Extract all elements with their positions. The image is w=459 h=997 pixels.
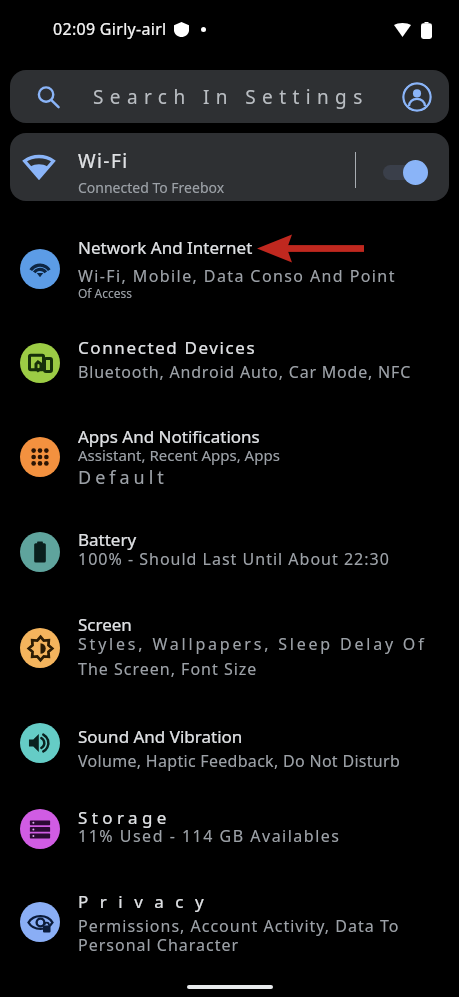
- staticText: The Screen, Font Size: [78, 658, 258, 680]
- button[interactable]: Storage: [0, 790, 459, 868]
- other: Search: [36, 85, 60, 109]
- staticText: 11% Used - 114 GB Availables: [78, 825, 341, 847]
- staticText: Battery: [78, 528, 137, 551]
- staticText: Storage: [78, 806, 171, 829]
- button[interactable]: Screen: [0, 600, 459, 696]
- staticText: Volume, Haptic Feedback, Do Not Disturb: [78, 750, 401, 772]
- staticText: Network And Internet: [78, 236, 253, 259]
- other: Vpn: [174, 22, 189, 37]
- staticText: 100% - Should Last Until About 22:30: [78, 548, 390, 570]
- staticText: Of Access: [78, 285, 133, 301]
- button[interactable]: Wi-Fi toggle: [383, 159, 428, 185]
- staticText: Assistant, Recent Apps, Apps: [78, 445, 280, 465]
- staticText: Apps And Notifications: [78, 425, 260, 448]
- staticText: Bluetooth, Android Auto, Car Mode, NFC: [78, 361, 412, 383]
- staticText: Sound And Vibration: [78, 725, 243, 748]
- staticText: Search In Settings: [93, 84, 369, 110]
- staticText: Connected Devices: [78, 336, 257, 359]
- staticText: 02:09 Girly-airl: [53, 18, 167, 40]
- button[interactable]: Apps And Notifications: [0, 410, 459, 504]
- staticText: Connected To Freebox: [78, 178, 225, 197]
- staticText: Default: [78, 465, 168, 490]
- button[interactable]: Network And Internet: [0, 222, 459, 316]
- staticText: Permissions, Account Activity, Data To: [78, 915, 400, 937]
- button[interactable]: Battery: [0, 504, 459, 600]
- button[interactable]: Privacy: [0, 868, 459, 976]
- staticText: Styles, Wallpapers, Sleep Delay Of: [78, 633, 427, 655]
- staticText: Wi-Fi: [78, 148, 129, 174]
- button[interactable]: Sound And Vibration: [0, 696, 459, 790]
- staticText: Wi-Fi, Mobile, Data Conso And Point: [78, 265, 396, 287]
- staticText: Personal Character: [78, 934, 240, 956]
- button[interactable]: Search: [10, 70, 449, 123]
- staticText: Screen: [78, 613, 132, 636]
- button[interactable]: Wi-Fi: [10, 133, 449, 201]
- staticText: Privacy: [78, 890, 216, 913]
- button[interactable]: Connected Devices: [0, 316, 459, 410]
- button[interactable]: Account: [402, 82, 432, 112]
